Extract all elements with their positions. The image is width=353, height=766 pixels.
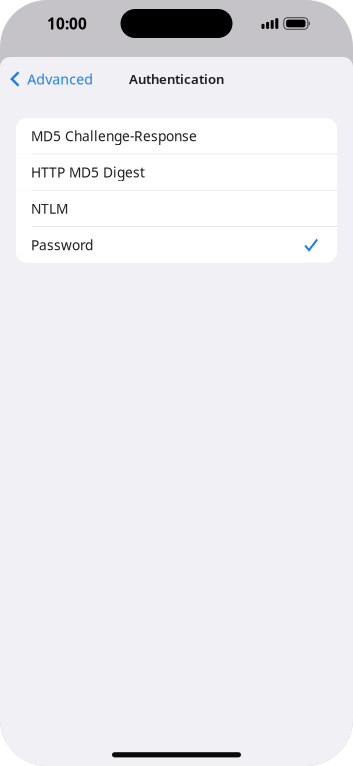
staticText: Advanced bbox=[27, 69, 93, 89]
staticText: Password bbox=[31, 235, 93, 254]
button[interactable]: Password bbox=[16, 227, 337, 263]
staticText: NTLM bbox=[31, 199, 68, 218]
staticText: Authentication bbox=[129, 70, 224, 88]
staticText: HTTP MD5 Digest bbox=[31, 163, 145, 181]
button[interactable]: Advanced bbox=[0, 62, 101, 96]
staticText: MD5 Challenge-Response bbox=[31, 126, 197, 145]
button[interactable]: MD5 Challenge-Response bbox=[16, 118, 337, 154]
button[interactable]: HTTP MD5 Digest bbox=[16, 154, 337, 191]
button[interactable]: NTLM bbox=[16, 191, 337, 227]
staticText: 10:00 bbox=[47, 13, 87, 34]
